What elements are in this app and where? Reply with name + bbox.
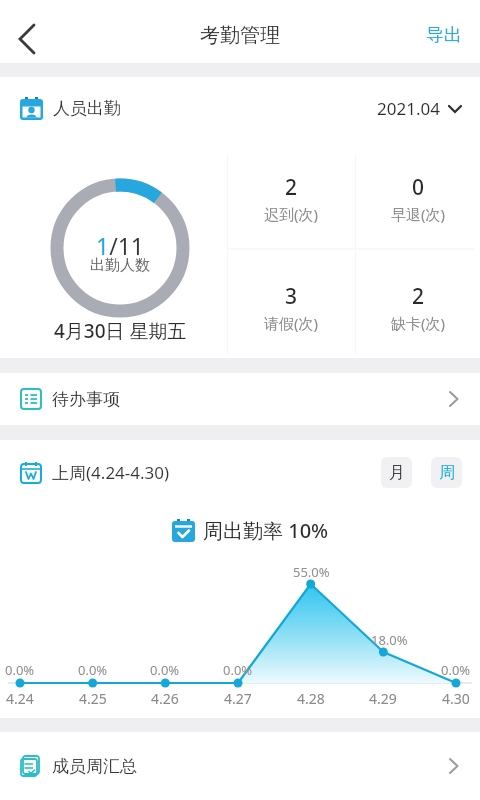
staticText: 2: [412, 282, 425, 311]
staticText: 缺卡(次): [391, 313, 446, 333]
button[interactable]: 人员出勤: [0, 77, 480, 140]
staticText: 1/11: [96, 230, 145, 261]
button[interactable]: 成员周汇总: [0, 732, 480, 800]
staticText: 4月30日 星期五: [54, 318, 187, 344]
staticText: 4.30: [442, 689, 470, 708]
staticText: 迟到(次): [264, 204, 319, 224]
staticText: 4.28: [297, 689, 325, 708]
staticText: 月: [389, 463, 405, 483]
staticText: 成员周汇总: [52, 756, 137, 777]
button[interactable]: 待办事项: [0, 373, 480, 425]
staticText: 出勤人数: [90, 256, 150, 275]
staticText: 上周(4.24-4.30): [52, 461, 170, 484]
staticText: 3: [285, 282, 298, 311]
staticText: 考勤管理: [200, 23, 280, 48]
staticText: 0.0%: [223, 661, 253, 679]
staticText: 待办事项: [52, 389, 120, 410]
button[interactable]: 导出: [426, 24, 462, 47]
staticText: 4.27: [224, 689, 252, 708]
button[interactable]: 周: [431, 457, 462, 488]
staticText: 55.0%: [293, 563, 330, 581]
button[interactable]: [0, 12, 48, 60]
staticText: 请假(次): [264, 313, 319, 333]
staticText: 0.0%: [5, 661, 35, 679]
staticText: 2021.04: [377, 97, 440, 120]
staticText: 4.24: [6, 689, 34, 708]
staticText: 4.29: [369, 689, 397, 708]
staticText: 4.26: [151, 689, 179, 708]
staticText: 0.0%: [78, 661, 108, 679]
staticText: 0.0%: [441, 661, 471, 679]
staticText: 周出勤率 10%: [203, 517, 329, 544]
staticText: 导出: [426, 24, 462, 47]
button[interactable]: 月: [381, 457, 412, 488]
staticText: 0.0%: [150, 661, 180, 679]
staticText: 4.25: [79, 689, 107, 708]
staticText: 18.0%: [371, 631, 408, 649]
staticText: 人员出勤: [53, 98, 121, 119]
staticText: 早退(次): [391, 204, 446, 224]
staticText: 0: [412, 173, 425, 202]
staticText: 周: [439, 463, 455, 483]
staticText: 2: [285, 173, 298, 202]
